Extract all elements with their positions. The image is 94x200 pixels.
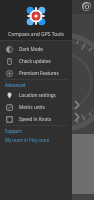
button[interactable]: Dark Mode (0, 43, 72, 55)
staticText: My team in Play store (5, 137, 50, 143)
staticText: Compass and GPS Tools (8, 31, 64, 38)
button[interactable]: Location settings (0, 89, 72, 101)
button[interactable]: Premium Features Unlocked (0, 67, 72, 79)
staticText: Check updates (19, 58, 51, 64)
staticText: Speed in Knots (19, 116, 52, 122)
button[interactable]: Speed in Knots (0, 113, 72, 125)
staticText: Advanced (5, 82, 26, 88)
staticText: Premium Features Unlocked (19, 70, 69, 76)
button[interactable]: Compass settings (82, 2, 91, 11)
staticText: Location settings (19, 92, 56, 98)
staticText: Dark Mode (19, 46, 43, 52)
staticText: Metric units (19, 104, 45, 110)
button[interactable]: My team in Play store (0, 135, 72, 144)
button[interactable]: Metric units (0, 101, 72, 113)
staticText: Support (5, 128, 22, 134)
button[interactable]: Check updates (0, 55, 72, 67)
